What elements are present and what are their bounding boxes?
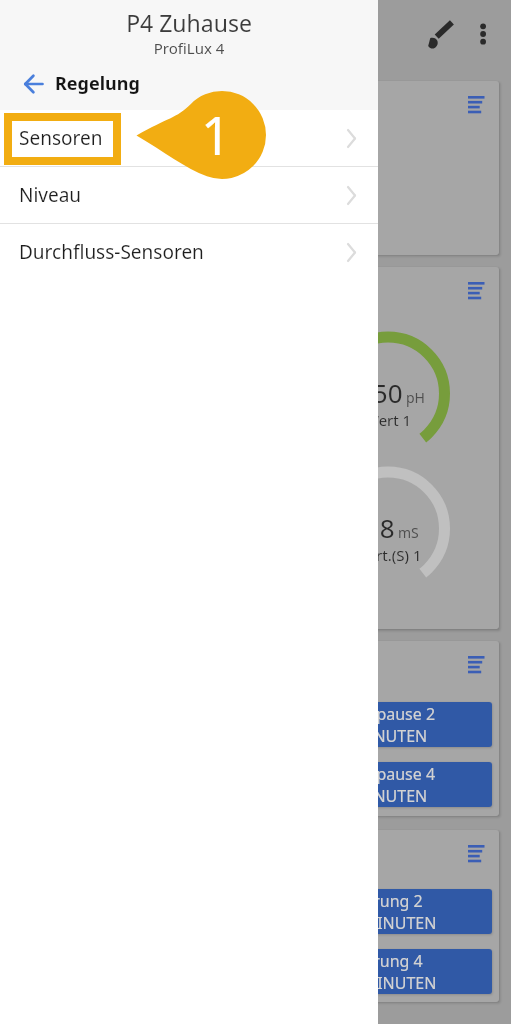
button[interactable]: More options (470, 18, 498, 46)
button[interactable]: Card menu (468, 96, 485, 113)
other: Back (24, 75, 43, 93)
button[interactable]: Back (24, 71, 140, 96)
staticText: Durchfluss-Sensoren (19, 239, 204, 265)
staticText: 120 MINUTEN (331, 912, 437, 934)
button[interactable]: Theme (420, 16, 456, 52)
button[interactable]: Dosierung 4 (310, 949, 492, 994)
button[interactable]: Futterpause 2 (310, 702, 492, 747)
staticText: mS (398, 523, 419, 542)
staticText: ProfiLux 4 (0, 38, 378, 58)
staticText: 1.8 (358, 510, 395, 545)
button[interactable] (12, 830, 499, 1002)
button[interactable]: Sensoren (0, 110, 378, 166)
button[interactable] (12, 81, 499, 255)
button[interactable]: Niveau (0, 167, 378, 223)
staticText: Sensoren (19, 125, 103, 151)
staticText: Wert.(S) 1 (354, 545, 422, 565)
staticText: Regelung (55, 71, 140, 96)
button[interactable]: Durchfluss-Sensoren (0, 224, 378, 280)
button[interactable]: Dosierung 2 (310, 889, 492, 934)
button[interactable]: Card menu (468, 656, 485, 673)
button[interactable]: Card menu (468, 845, 485, 862)
staticText: 10 MINUTEN (331, 725, 428, 747)
staticText: Dosierung 2 (331, 890, 423, 912)
staticText: Dosierung 4 (331, 950, 423, 972)
button[interactable]: Futterpause 4 (310, 762, 492, 807)
staticText: 7.50 (351, 375, 403, 410)
staticText: 10 MINUTEN (331, 785, 428, 807)
staticText: Niveau (19, 182, 82, 208)
staticText: P4 Zuhause (0, 7, 378, 38)
button[interactable] (12, 641, 499, 816)
button[interactable]: Card menu (468, 282, 485, 299)
staticText: 120 MINUTEN (331, 972, 437, 994)
staticText: Futterpause 2 (331, 703, 436, 725)
staticText: 1 (201, 99, 231, 170)
button[interactable] (12, 267, 499, 629)
staticText: Wert 1 (365, 410, 412, 430)
staticText: pH (406, 388, 425, 407)
staticText: Futterpause 4 (331, 763, 436, 785)
